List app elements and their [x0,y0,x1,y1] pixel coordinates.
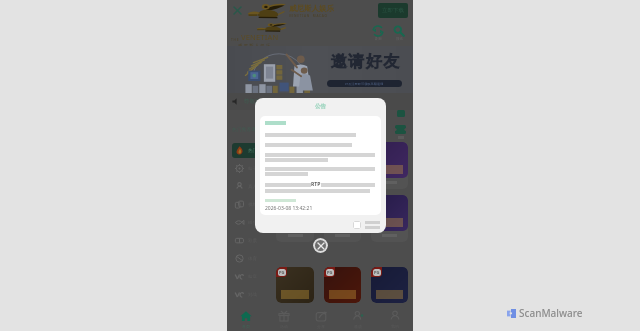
button[interactable]: 电竞 [232,269,264,284]
staticText: PG [279,270,285,275]
staticText: ScanMalware [519,306,583,320]
staticText: 捕鱼 [248,220,257,226]
button[interactable]: 电子 [232,161,264,176]
staticText: 好友注册即可领取高额返佣 [345,82,384,86]
staticText: 公告 [315,103,326,110]
button[interactable]: 热门 [232,143,264,158]
button[interactable]: 真人 [232,179,264,194]
button[interactable]: Close download banner [227,0,247,21]
button[interactable]: 棋牌 [232,197,264,212]
staticText: 电子 [248,166,257,172]
staticText: 威尼斯人娱乐 [289,4,334,13]
staticText: 首页 [242,324,250,329]
button[interactable]: Game [324,195,361,242]
staticText: PG [279,145,285,150]
button[interactable]: Announcements [227,93,413,110]
button[interactable]: Search [392,26,406,41]
button[interactable]: Game [276,267,314,303]
staticText: VENETIAN [241,32,279,42]
button[interactable]: 体育 [232,251,264,266]
button[interactable]: 首页 [227,307,265,331]
staticText: THE [231,38,241,42]
staticText: 搜索 [396,37,403,41]
staticText: 棋牌 [248,202,257,208]
button[interactable]: Game [276,142,314,189]
staticText: 邀请好友 [330,52,400,72]
button[interactable]: Messages [397,110,405,117]
staticText: 2026-03-08 13:42:21 [265,205,313,212]
staticText: 尊敬的会员，平台已完成系统维护升级 [244,98,338,105]
button[interactable]: Invite friends banner [227,46,413,93]
staticText: 热门推荐游戏 [232,127,262,133]
staticText: 威尼斯人娱乐 [238,43,272,46]
button[interactable]: Close [313,238,328,253]
staticText: PG [327,270,333,275]
staticText: 热门 [248,148,257,154]
staticText: 真人 [248,184,257,190]
button[interactable]: Game [276,195,314,242]
staticText: PG [374,270,380,275]
staticText: 立即下载 [382,7,404,14]
button[interactable]: Game [371,142,408,189]
button[interactable]: Refresh [371,26,385,41]
button[interactable]: Do not show again [353,221,361,229]
button[interactable]: Game [324,267,361,303]
button[interactable]: 对战 [232,287,264,302]
staticText: VENETIAN MACAO [289,14,328,18]
button[interactable]: Game [371,195,408,242]
button[interactable]: 捕鱼 [232,215,264,230]
button[interactable]: Game [371,267,408,303]
button[interactable]: 立即下载 [378,3,408,18]
button[interactable]: Game [324,142,361,189]
button[interactable]: Coupons [395,125,406,134]
staticText: RTP [311,181,321,188]
staticText: PG [279,198,285,203]
staticText: 刷新 [375,37,382,41]
staticText: PG [327,145,333,150]
button[interactable]: 彩票 [232,233,264,248]
